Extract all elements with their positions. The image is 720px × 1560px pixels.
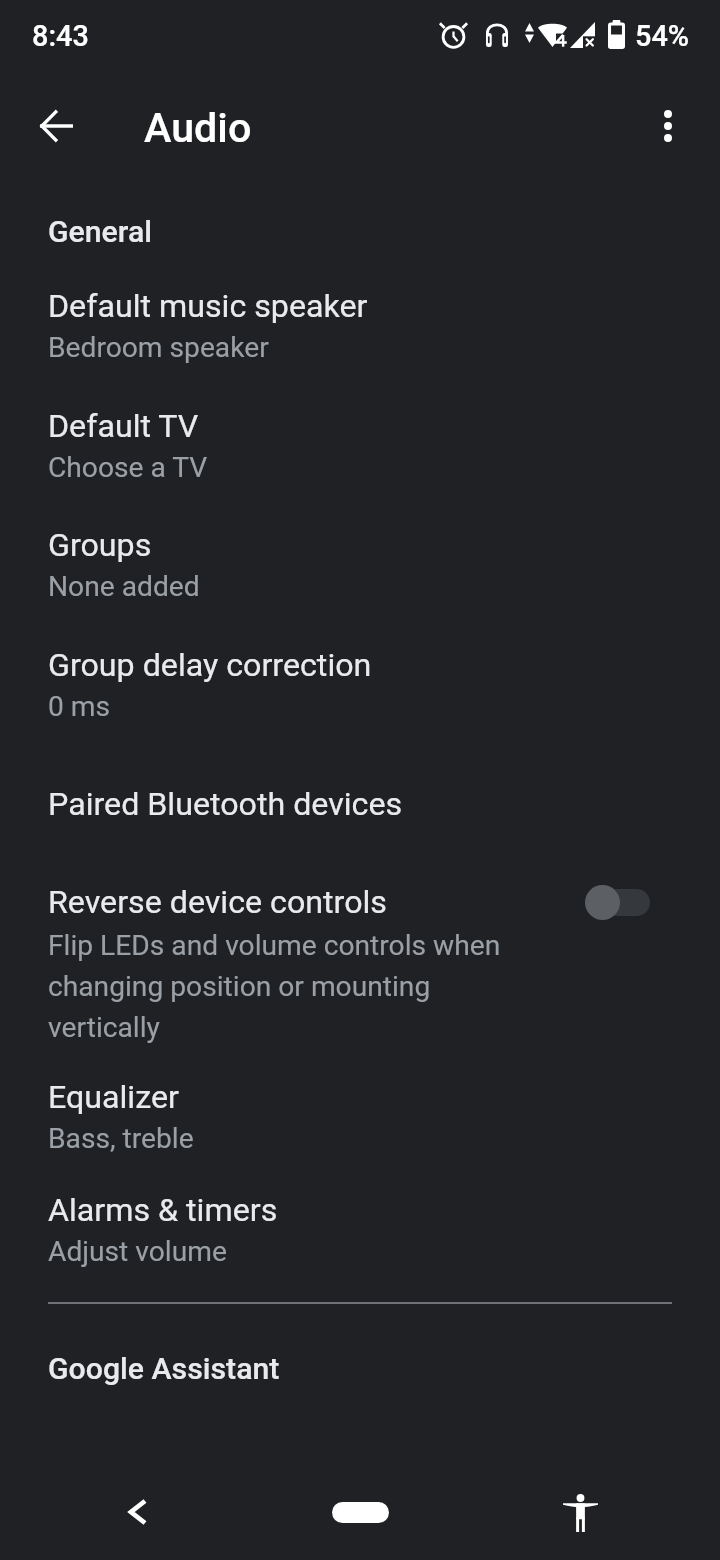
staticText: Group delay correction xyxy=(48,646,372,684)
button[interactable]: Reverse device controls xyxy=(0,865,720,1055)
staticText: 54% xyxy=(635,19,690,53)
staticText: Choose a TV xyxy=(48,451,208,484)
button[interactable]: Home xyxy=(300,1476,420,1548)
staticText: Bass, treble xyxy=(48,1122,194,1155)
button[interactable]: Equalizer xyxy=(0,1060,720,1168)
staticText: 8:43 xyxy=(32,19,89,53)
button[interactable]: Groups xyxy=(0,508,720,616)
staticText: Equalizer xyxy=(48,1078,179,1116)
button[interactable]: Default TV xyxy=(0,389,720,497)
staticText: General xyxy=(48,214,152,249)
button[interactable]: Paired Bluetooth devices xyxy=(0,747,720,839)
staticText: Default TV xyxy=(48,407,199,445)
button[interactable]: More options xyxy=(632,90,704,162)
button[interactable]: Default music speaker xyxy=(0,269,720,377)
staticText: Groups xyxy=(48,526,152,564)
button[interactable]: Alarms & timers xyxy=(0,1173,720,1281)
staticText: Audio xyxy=(144,104,252,152)
button[interactable]: Navigate up xyxy=(20,90,92,162)
staticText: Flip LEDs and volume controls when chang… xyxy=(48,923,508,1046)
staticText: Reverse device controls xyxy=(48,883,387,921)
staticText: Bedroom speaker xyxy=(48,331,269,364)
staticText: Alarms & timers xyxy=(48,1191,278,1229)
staticText: Google Assistant xyxy=(48,1351,280,1386)
staticText: Paired Bluetooth devices xyxy=(48,785,403,823)
staticText: Adjust volume xyxy=(48,1235,227,1268)
staticText: None added xyxy=(48,570,200,603)
button[interactable]: Back xyxy=(102,1476,174,1548)
staticText: 0 ms xyxy=(48,690,111,723)
button[interactable]: Group delay correction xyxy=(0,628,720,736)
button[interactable]: Accessibility xyxy=(544,1476,616,1548)
staticText: Default music speaker xyxy=(48,287,368,325)
